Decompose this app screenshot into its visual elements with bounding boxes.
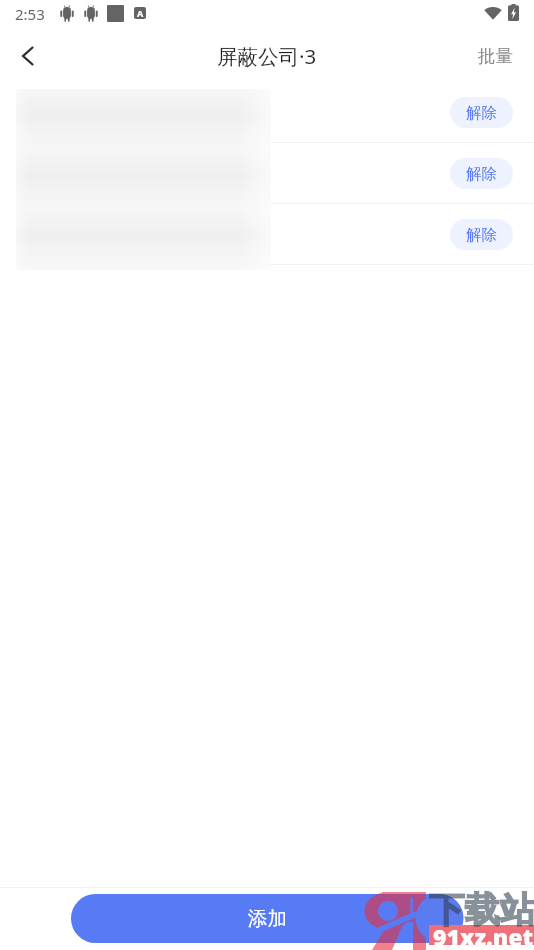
staticText: 2:53 xyxy=(15,4,45,24)
button[interactable]: 解除 xyxy=(450,158,513,189)
button[interactable]: 解除 xyxy=(450,219,513,250)
button[interactable]: 解除 xyxy=(0,143,534,204)
button[interactable]: Back xyxy=(0,28,56,81)
button[interactable]: 添加 xyxy=(71,894,463,943)
button[interactable]: 解除 xyxy=(450,97,513,128)
staticText: 解除 xyxy=(466,103,497,123)
staticText: 下载站 xyxy=(429,888,534,933)
staticText: 解除 xyxy=(466,164,497,184)
staticText: 批量 xyxy=(478,45,513,67)
button[interactable]: 解除 xyxy=(0,204,534,265)
staticText: 屏蔽公司·3 xyxy=(217,42,317,70)
button[interactable]: 批量 xyxy=(458,28,534,81)
staticText: 解除 xyxy=(466,225,497,245)
staticText: 添加 xyxy=(248,906,287,931)
button[interactable]: 解除 xyxy=(0,82,534,143)
staticText: A xyxy=(137,7,144,19)
staticText: 91xz.net xyxy=(433,921,533,950)
